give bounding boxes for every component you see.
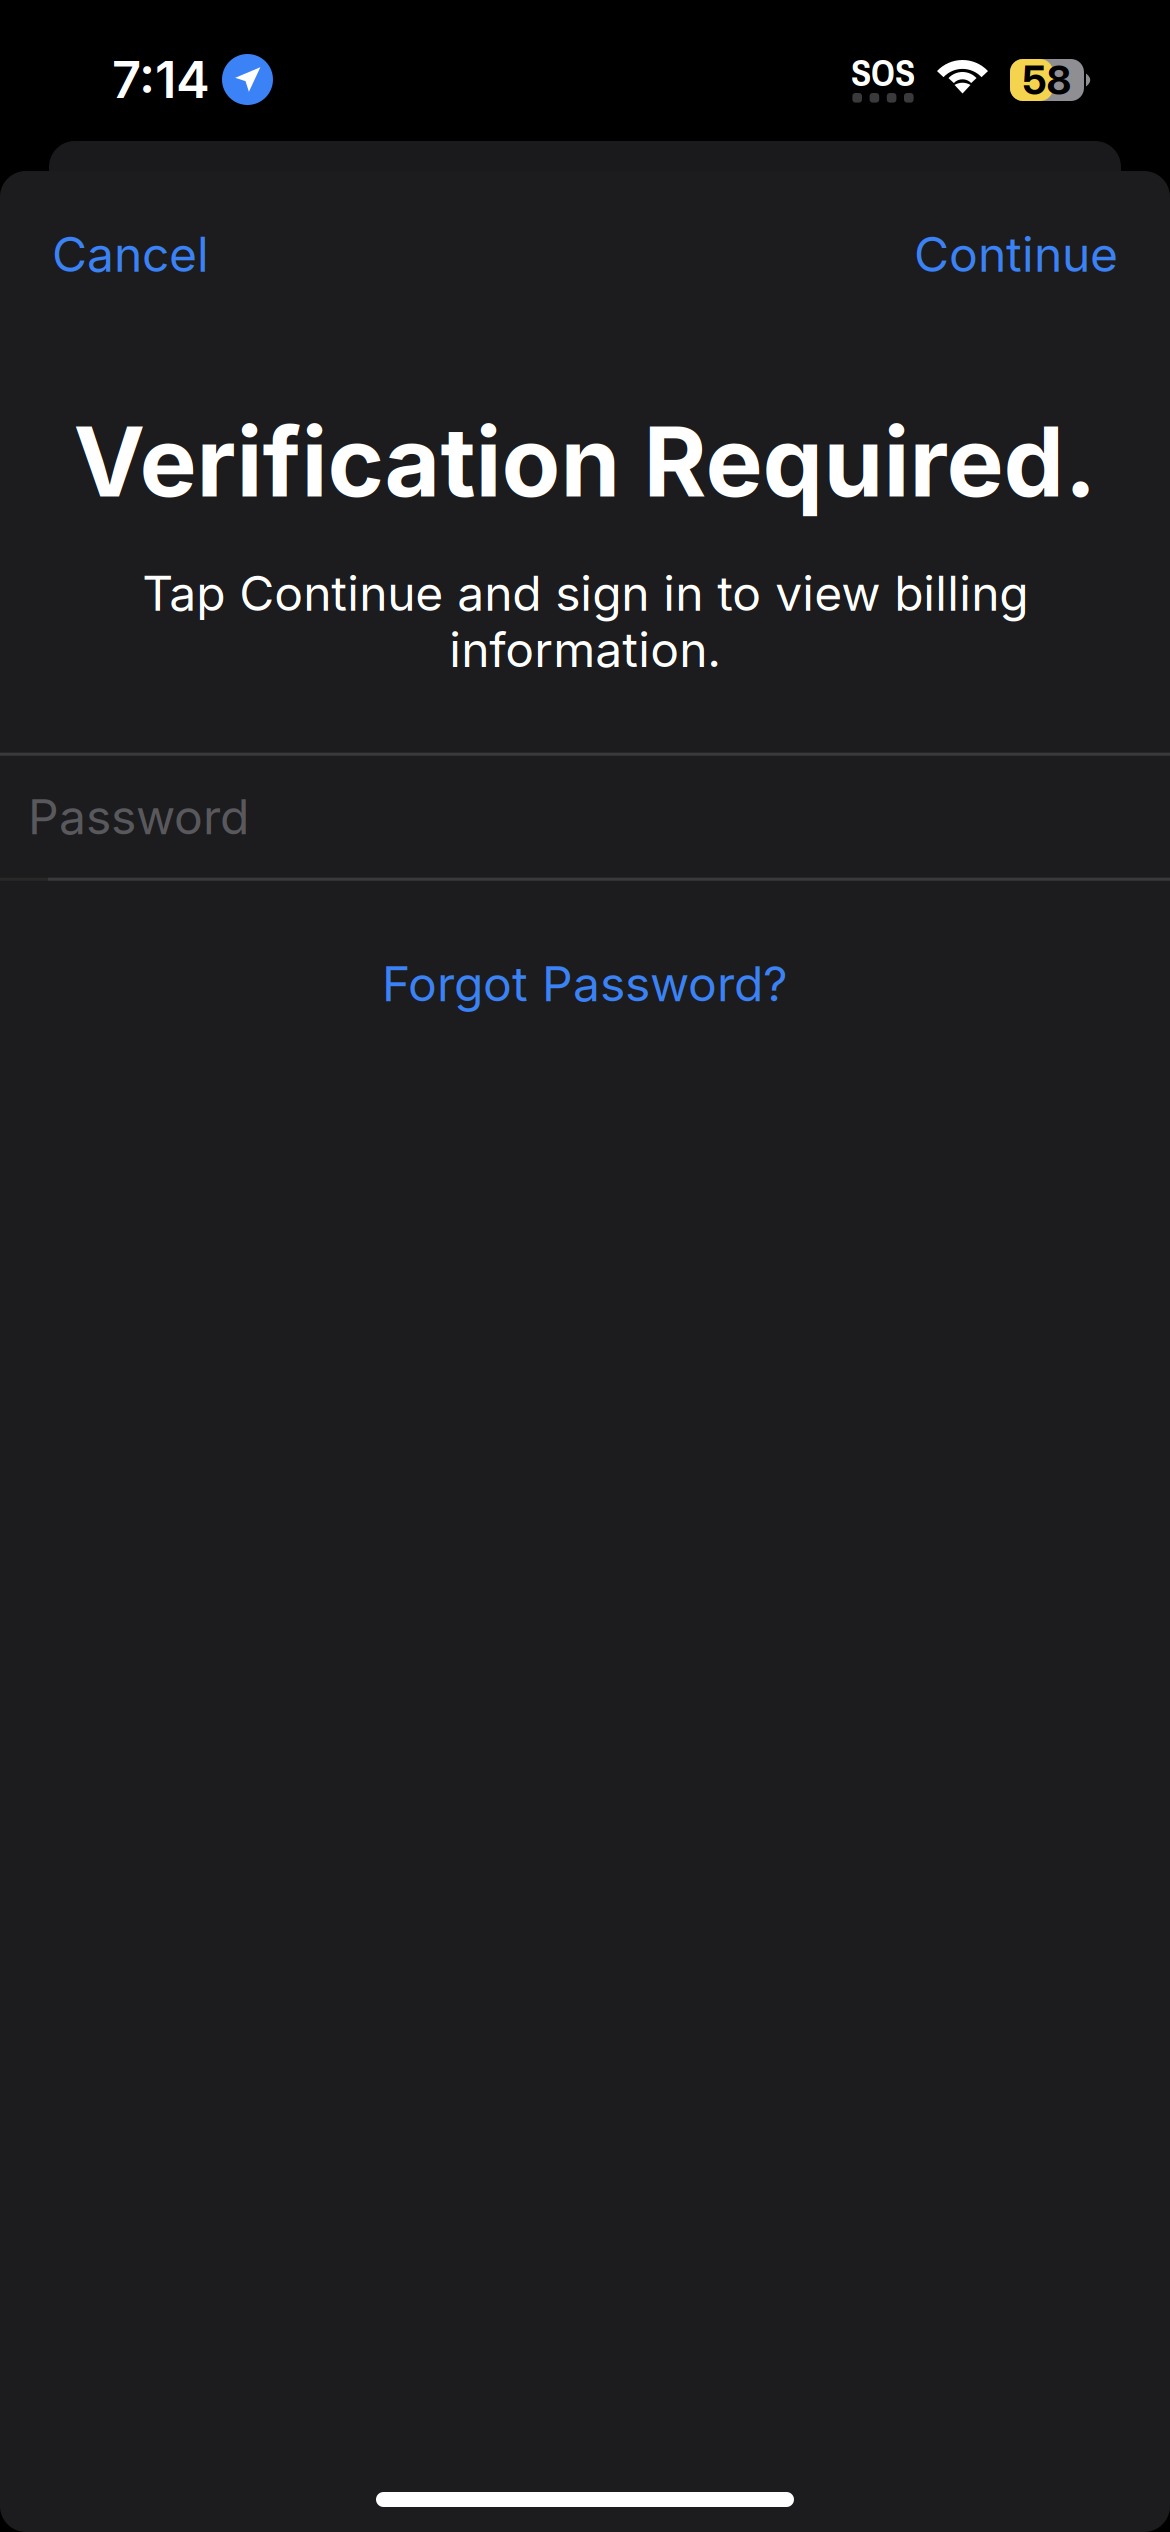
staticText: Verification Required. bbox=[73, 405, 1096, 518]
button[interactable]: Forgot Password? bbox=[358, 940, 812, 1028]
staticText: Continue bbox=[914, 226, 1118, 282]
staticText: Forgot Password? bbox=[382, 956, 788, 1012]
staticText: 7:14 bbox=[112, 50, 210, 109]
button[interactable]: Cancel bbox=[38, 208, 223, 300]
staticText: Cancel bbox=[52, 226, 209, 282]
staticText: Tap Continue and sign in to view billing… bbox=[142, 565, 1028, 678]
staticText: 58 bbox=[1022, 56, 1071, 103]
staticText: Password bbox=[28, 788, 249, 845]
staticText: SOS bbox=[851, 48, 915, 97]
button[interactable]: Continue bbox=[900, 208, 1132, 300]
